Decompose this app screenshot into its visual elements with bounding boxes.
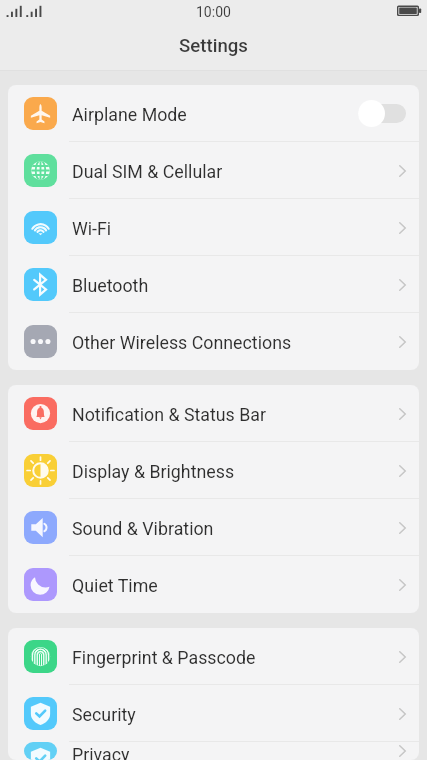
- button[interactable]: Privacy: [8, 742, 419, 760]
- staticText: Sound & Vibration: [72, 518, 214, 539]
- button[interactable]: Airplane Mode toggle: [358, 100, 406, 127]
- button[interactable]: Wi-Fi: [8, 199, 419, 256]
- staticText: Quiet Time: [72, 575, 158, 596]
- button[interactable]: Sound & Vibration: [8, 499, 419, 556]
- button[interactable]: Display & Brightness: [8, 442, 419, 499]
- staticText: Security: [72, 704, 136, 725]
- staticText: Fingerprint & Passcode: [72, 647, 256, 668]
- staticText: Notification & Status Bar: [72, 404, 266, 425]
- button[interactable]: Security: [8, 685, 419, 742]
- button[interactable]: Quiet Time: [8, 556, 419, 613]
- button[interactable]: Other Wireless Connections: [8, 313, 419, 370]
- staticText: Dual SIM & Cellular: [72, 161, 223, 182]
- staticText: 10:00: [196, 4, 231, 20]
- staticText: Wi-Fi: [72, 218, 112, 239]
- button[interactable]: Airplane Mode: [8, 85, 419, 142]
- button[interactable]: Bluetooth: [8, 256, 419, 313]
- button[interactable]: Dual SIM & Cellular: [8, 142, 419, 199]
- staticText: Settings: [179, 35, 248, 57]
- staticText: Privacy: [72, 744, 130, 760]
- button[interactable]: Fingerprint & Passcode: [8, 628, 419, 685]
- staticText: Display & Brightness: [72, 461, 235, 482]
- staticText: Airplane Mode: [72, 104, 187, 125]
- staticText: Other Wireless Connections: [72, 332, 292, 353]
- staticText: Bluetooth: [72, 275, 149, 296]
- button[interactable]: Notification & Status Bar: [8, 385, 419, 442]
